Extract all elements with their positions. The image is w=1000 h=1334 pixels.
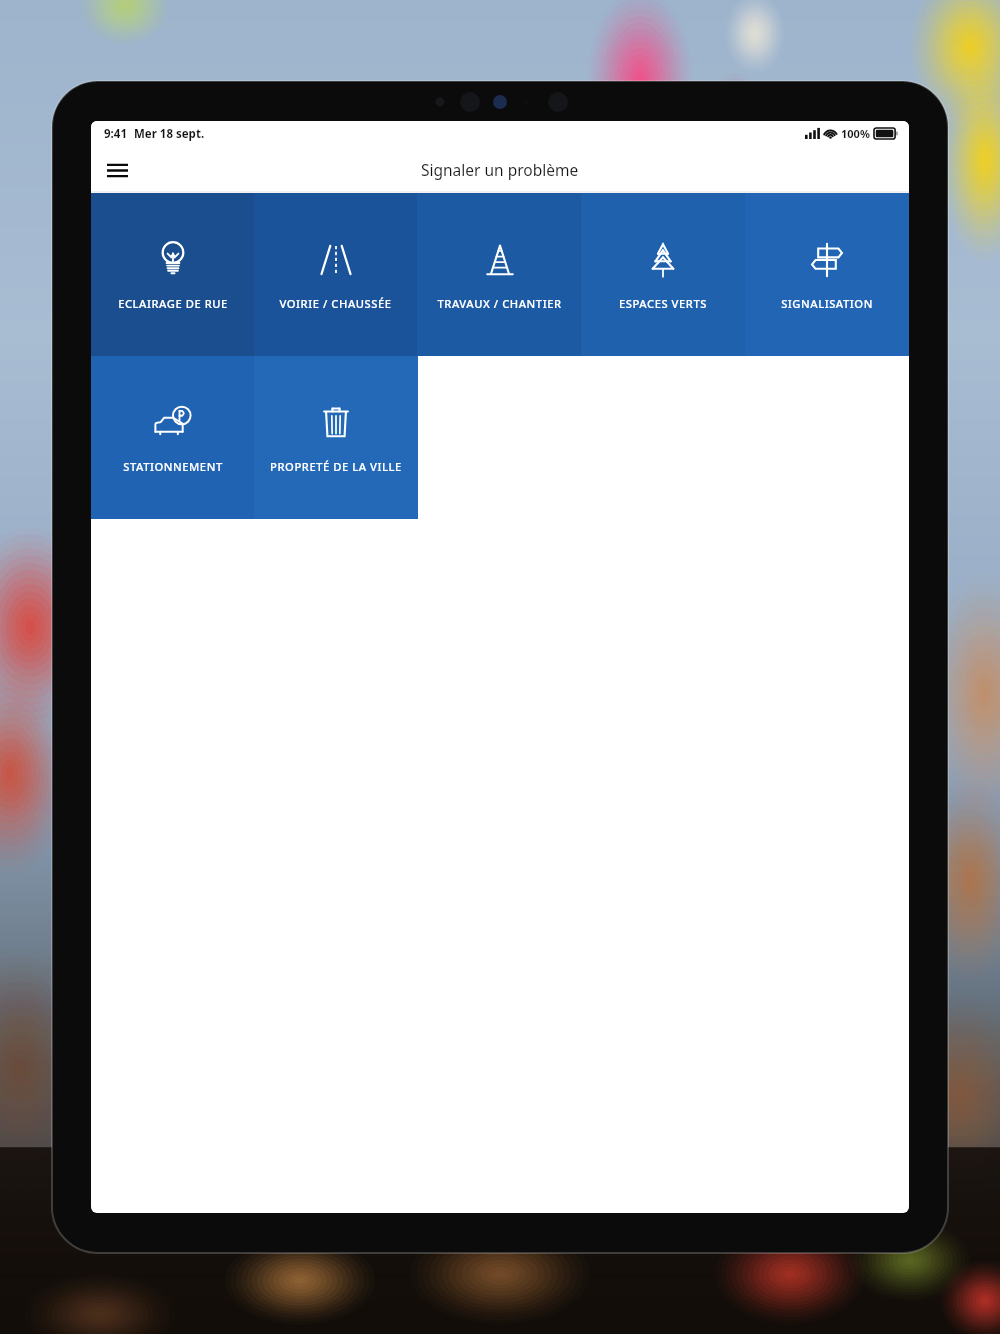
button[interactable]: PROPRETÉ DE LA VILLE: [254, 356, 418, 519]
staticText: ECLAIRAGE DE RUE: [118, 296, 228, 311]
button[interactable]: Menu: [99, 152, 135, 188]
button[interactable]: ECLAIRAGE DE RUE: [91, 193, 254, 356]
staticText: 100%: [841, 126, 870, 141]
staticText: Mer 18 sept.: [134, 126, 205, 142]
staticText: ESPACES VERTS: [619, 296, 707, 311]
staticText: Signaler un problème: [421, 159, 579, 180]
staticText: PROPRETÉ DE LA VILLE: [270, 459, 402, 474]
button[interactable]: TRAVAUX / CHANTIER: [417, 193, 581, 356]
staticText: SIGNALISATION: [781, 296, 873, 311]
button[interactable]: SIGNALISATION: [745, 193, 909, 356]
button[interactable]: VOIRIE / CHAUSSÉE: [254, 193, 417, 356]
button[interactable]: ESPACES VERTS: [581, 193, 745, 356]
staticText: TRAVAUX / CHANTIER: [437, 296, 562, 311]
staticText: STATIONNEMENT: [123, 459, 223, 474]
staticText: VOIRIE / CHAUSSÉE: [279, 296, 392, 311]
button[interactable]: STATIONNEMENT: [91, 356, 254, 519]
staticText: 9:41: [104, 126, 127, 142]
